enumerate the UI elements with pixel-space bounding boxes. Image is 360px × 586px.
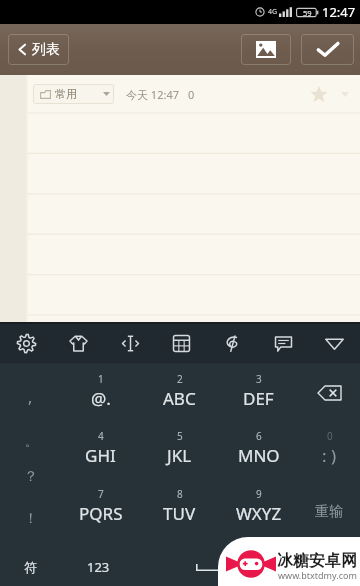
staticText: 符 (24, 559, 37, 575)
button[interactable]: 8 (140, 477, 219, 535)
staticText: 6 (256, 429, 262, 443)
staticText: 123 (87, 558, 110, 576)
staticText: PQRS (79, 502, 123, 525)
staticText: 今天 12:47 (126, 87, 179, 102)
button[interactable]: 0 (298, 419, 360, 477)
staticText: 常用 (55, 87, 77, 101)
staticText: TUV (163, 502, 196, 525)
staticText: 59 (303, 8, 312, 18)
staticText: 重输 (315, 503, 343, 521)
button[interactable]: Delete (298, 363, 360, 419)
staticText: 4G (268, 7, 278, 17)
staticText: MNO (238, 444, 280, 467)
button[interactable]: Favorite (304, 79, 334, 109)
staticText: DEF (243, 387, 274, 410)
button[interactable]: 4 (61, 419, 140, 477)
staticText: 0 (188, 87, 195, 102)
button[interactable]: Resize keyboard (104, 324, 156, 362)
staticText: : ) (322, 444, 337, 467)
staticText: 3 (256, 372, 262, 386)
staticText: ？ (24, 468, 38, 486)
staticText: 12:47 (322, 3, 356, 21)
button[interactable]: Theme (52, 324, 104, 362)
button[interactable]: 2 (140, 363, 219, 419)
staticText: 2 (177, 372, 183, 386)
button[interactable]: Messages (258, 324, 309, 362)
staticText: , (28, 386, 33, 408)
button[interactable]: 5 (140, 419, 219, 477)
button[interactable]: More options (336, 82, 354, 106)
button[interactable]: Handwriting (207, 324, 258, 362)
staticText: ABC (163, 387, 196, 410)
button[interactable]: 3 (219, 363, 298, 419)
button[interactable]: 123 (60, 535, 136, 586)
staticText: 5 (177, 429, 183, 443)
button[interactable]: 1 (61, 363, 140, 419)
staticText: 8 (177, 487, 183, 501)
staticText: @. (91, 387, 111, 410)
button[interactable]: 9 (219, 477, 298, 535)
button[interactable]: Save note (301, 34, 354, 65)
staticText: GHI (85, 444, 116, 467)
staticText: WXYZ (236, 502, 282, 525)
staticText: 9 (256, 487, 262, 501)
button[interactable]: Hide keyboard (309, 324, 360, 362)
staticText: 1 (98, 372, 104, 386)
button[interactable]: Keyboard layout (156, 324, 207, 362)
button[interactable]: 。 (0, 419, 61, 477)
button[interactable]: Enter (289, 535, 360, 586)
staticText: 0 (327, 429, 333, 443)
button[interactable]: 常用 (33, 84, 114, 104)
staticText: 。 (25, 434, 37, 449)
button[interactable]: Space (136, 535, 289, 586)
button[interactable]: 列表 (8, 34, 69, 65)
staticText: 4 (98, 429, 104, 443)
button[interactable]: Insert image (241, 34, 291, 65)
staticText: 冰糖安卓网 (277, 551, 357, 571)
staticText: JKL (167, 444, 192, 467)
button[interactable]: ！ (0, 477, 61, 535)
button[interactable]: Settings (0, 324, 52, 362)
button[interactable]: , (0, 363, 61, 419)
staticText: ！ (24, 510, 38, 528)
button[interactable]: 7 (61, 477, 140, 535)
staticText: 列表 (32, 41, 60, 59)
button[interactable]: 符 (0, 535, 60, 586)
staticText: www.btxtdmy.com (278, 569, 357, 581)
staticText: 7 (98, 487, 104, 501)
button[interactable]: 6 (219, 419, 298, 477)
button[interactable]: 重输 (298, 477, 360, 535)
